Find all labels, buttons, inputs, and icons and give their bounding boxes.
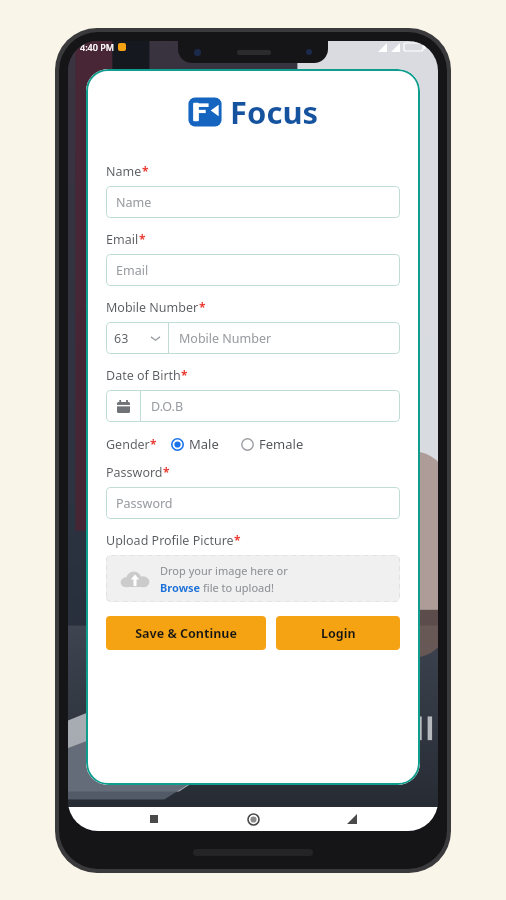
staticText: * [142,163,149,179]
staticText: Gender [106,436,150,453]
staticText: * [163,464,170,480]
staticText: Password [106,464,163,481]
button[interactable]: Password [106,487,400,519]
staticText: * [139,231,146,247]
staticText: * [181,367,188,383]
staticText: D.O.B [151,398,184,415]
staticText: Upload Profile Picture [106,532,234,549]
staticText: Date of Birth [106,367,181,384]
staticText: Female [259,435,304,453]
staticText: 4:40 PM [80,41,114,53]
button[interactable]: Home [240,807,266,831]
staticText: Browse file to upload! [160,580,274,595]
staticText: Drop your image here or [160,563,288,578]
staticText: * [150,436,157,452]
staticText: * [234,532,241,548]
button[interactable]: Recents [141,807,167,831]
staticText: Login [321,625,356,642]
button[interactable]: Back [339,807,365,831]
staticText: Name [116,194,152,211]
button[interactable]: D.O.B [141,390,400,422]
button[interactable]: Pick date [106,390,140,422]
button[interactable]: 63 [106,322,168,354]
button[interactable]: Drop your image here or [106,555,400,602]
button[interactable]: Name [106,186,400,218]
button[interactable]: Email [106,254,400,286]
staticText: Mobile Number [179,330,272,347]
staticText: 63 [114,330,129,347]
staticText: Password [116,495,173,512]
staticText: Name [106,163,142,180]
button[interactable]: Mobile Number [169,322,400,354]
button[interactable]: Male [171,435,219,453]
staticText: Mobile Number [106,299,199,316]
staticText: Email [116,262,149,279]
staticText: Email [106,231,139,248]
staticText: Male [189,435,219,453]
staticText: Save & Continue [135,625,237,642]
button[interactable]: Save & Continue [106,616,266,650]
staticText: * [199,299,206,315]
button[interactable]: Login [276,616,400,650]
button[interactable]: Female [241,435,304,453]
staticText: Focus [230,91,319,133]
